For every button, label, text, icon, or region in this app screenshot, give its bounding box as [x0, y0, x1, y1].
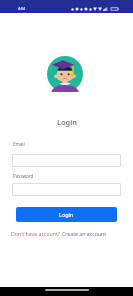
button[interactable] — [12, 183, 121, 196]
button[interactable] — [12, 154, 121, 167]
staticText: Don't have account? — [11, 230, 62, 237]
button[interactable]: Login — [16, 207, 117, 222]
staticText: 4:54 — [18, 6, 25, 11]
staticText: Password — [13, 173, 34, 179]
staticText: Login — [59, 211, 74, 218]
staticText: Login — [57, 117, 77, 127]
staticText: Email — [13, 141, 25, 147]
button[interactable]: Create an account — [62, 230, 107, 237]
